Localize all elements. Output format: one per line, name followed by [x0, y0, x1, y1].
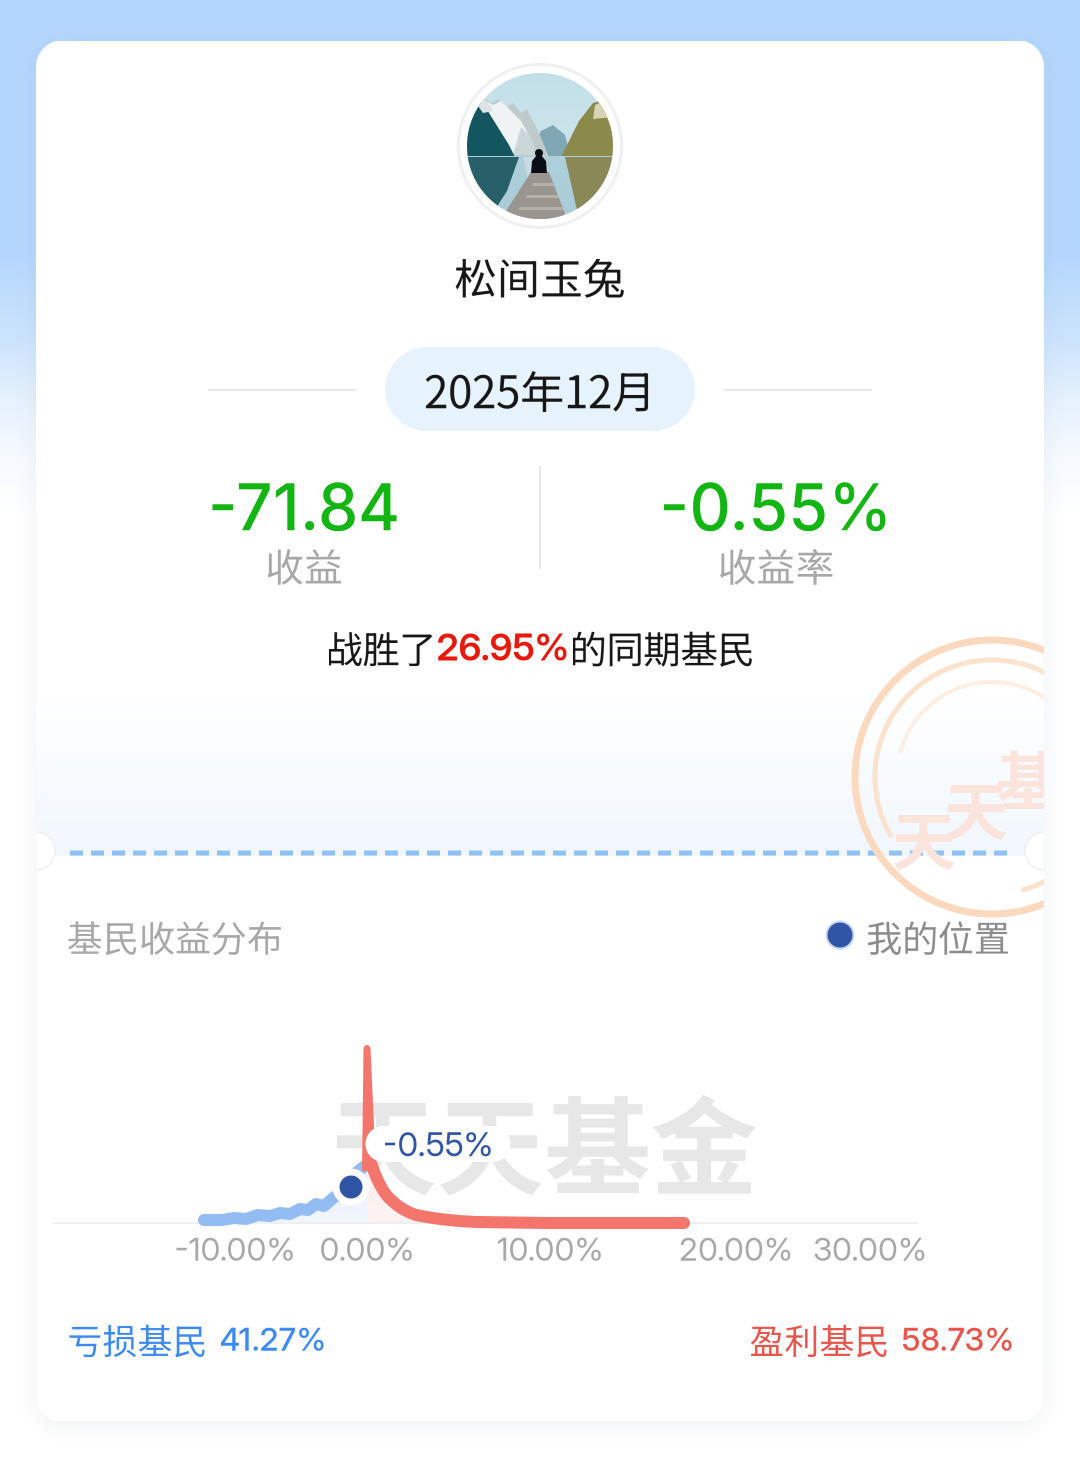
staticText: 战胜了 [325, 620, 436, 674]
staticText: 26.95% [436, 624, 569, 670]
staticText: 58.73% [901, 1320, 1014, 1358]
staticText: 收益率 [717, 537, 834, 593]
staticText: 2025年12月 [424, 357, 656, 421]
staticText: 收益 [265, 537, 343, 593]
staticText: 天天基金 [330, 1063, 758, 1217]
staticText: -0.55% [659, 468, 892, 546]
staticText: 亏损基民 [67, 1314, 207, 1364]
staticText: -0.55% [382, 1124, 493, 1164]
staticText: 基民收益分布 [67, 910, 283, 962]
staticText: -10.00% [174, 1230, 295, 1268]
staticText: 10.00% [496, 1230, 603, 1268]
staticText: 的同期基民 [569, 620, 754, 674]
staticText: 我的位置 [866, 910, 1010, 962]
staticText: 天 [944, 761, 1008, 853]
staticText: 0.00% [319, 1230, 414, 1268]
staticText: 基 [996, 731, 1060, 823]
staticText: -71.84 [208, 468, 400, 546]
staticText: 天 [892, 791, 956, 883]
staticText: 41.27% [219, 1320, 326, 1358]
button[interactable]: 松间玉兔 [36, 40, 1044, 1422]
staticText: 松间玉兔 [454, 245, 626, 307]
staticText: 盈利基民 [749, 1314, 889, 1364]
staticText: 30.00% [813, 1230, 927, 1268]
staticText: 20.00% [679, 1230, 793, 1268]
